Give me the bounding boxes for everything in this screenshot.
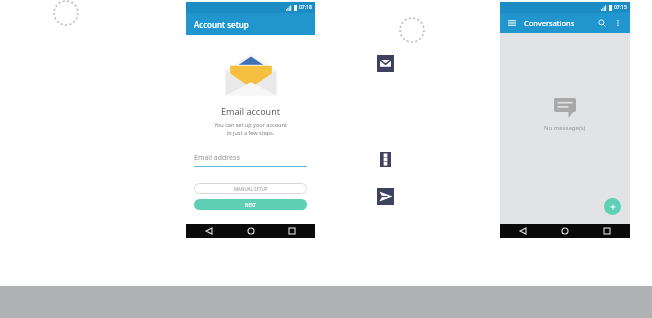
- button[interactable]: Home: [246, 226, 256, 236]
- button[interactable]: Send: [377, 188, 394, 205]
- staticText: Email account: [221, 105, 280, 117]
- button[interactable]: Recents: [602, 226, 612, 236]
- staticText: 07:15: [614, 4, 627, 11]
- button[interactable]: NEXT: [194, 199, 307, 210]
- button[interactable]: More options: [380, 152, 391, 167]
- staticText: NEXT: [245, 202, 257, 208]
- button[interactable]: More options: [612, 17, 624, 29]
- button[interactable]: Home: [560, 226, 570, 236]
- button[interactable]: Mail: [377, 55, 394, 72]
- button[interactable]: Search: [596, 17, 608, 29]
- button[interactable]: Back: [518, 226, 528, 236]
- staticText: 07:18: [299, 4, 312, 11]
- staticText: Conversations: [524, 18, 575, 28]
- staticText: Account setup: [194, 19, 249, 30]
- button[interactable]: Account setup: [186, 13, 315, 35]
- button[interactable]: New conversation: [604, 198, 621, 215]
- button[interactable]: MANUAL SETUP: [194, 183, 307, 194]
- button[interactable]: Recents: [287, 226, 297, 236]
- staticText: You can set up your account in just a fe…: [214, 121, 287, 137]
- staticText: MANUAL SETUP: [234, 186, 268, 192]
- button[interactable]: Email address: [194, 153, 307, 167]
- button[interactable]: Menu: [506, 17, 518, 29]
- staticText: Email address: [194, 153, 240, 163]
- staticText: No message(s): [544, 124, 586, 132]
- button[interactable]: Back: [204, 226, 214, 236]
